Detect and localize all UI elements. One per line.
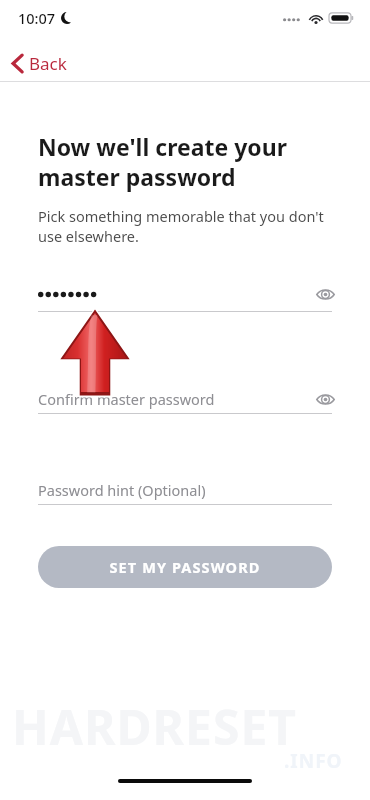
staticText: Password hint (Optional) bbox=[38, 480, 206, 500]
button[interactable]: Back bbox=[0, 48, 81, 81]
button[interactable]: Show password bbox=[308, 277, 342, 311]
staticText: Now we'll create your master password bbox=[38, 131, 287, 193]
staticText: HARDRESET bbox=[12, 694, 297, 759]
staticText: .INFO bbox=[284, 748, 343, 774]
button[interactable]: Show password bbox=[0, 276, 370, 312]
button[interactable]: Show password bbox=[308, 386, 342, 412]
staticText: Back bbox=[29, 52, 67, 75]
button[interactable]: Password hint (Optional) bbox=[0, 477, 370, 503]
button[interactable]: Confirm master password bbox=[0, 386, 370, 412]
staticText: 10:07 bbox=[18, 8, 56, 28]
staticText: Confirm master password bbox=[38, 389, 215, 409]
staticText: Pick something memorable that you don't … bbox=[38, 206, 324, 247]
staticText: SET MY PASSWORD bbox=[109, 557, 261, 577]
button[interactable]: SET MY PASSWORD bbox=[38, 546, 332, 588]
